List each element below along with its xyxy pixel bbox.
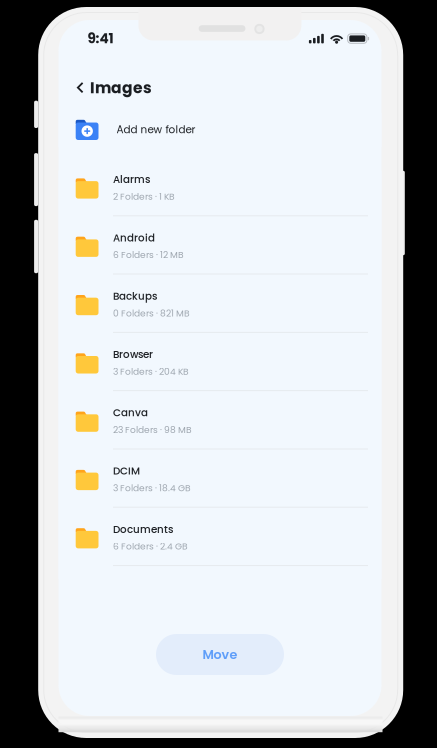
staticText: DCIM (113, 464, 140, 478)
staticText: Android (113, 231, 155, 245)
staticText: 6 Folders · 12 MB (113, 249, 184, 261)
staticText: Browser (113, 347, 153, 362)
staticText: Move (202, 646, 237, 663)
staticText: Alarms (113, 172, 150, 187)
staticText: 3 Folders · 18.4 GB (113, 482, 191, 494)
button[interactable]: Back (69, 75, 91, 101)
staticText: Canva (113, 405, 148, 420)
button[interactable]: DCIM (58, 462, 381, 521)
button[interactable]: Android (58, 229, 381, 287)
staticText: Images (90, 77, 152, 99)
staticText: 23 Folders · 98 MB (113, 423, 192, 436)
button[interactable]: Documents (58, 521, 381, 579)
staticText: Documents (113, 522, 173, 536)
staticText: 6 Folders · 2.4 GB (113, 540, 188, 553)
button[interactable]: Add new folder (58, 113, 381, 147)
button[interactable]: Canva (58, 404, 381, 462)
staticText: 0 Folders · 821 MB (113, 307, 190, 320)
button[interactable]: Alarms (58, 171, 381, 229)
staticText: Add new folder (116, 122, 195, 137)
staticText: Backups (113, 289, 157, 303)
staticText: 9:41 (87, 29, 113, 48)
staticText: 3 Folders · 204 KB (113, 365, 189, 378)
button[interactable]: Backups (58, 287, 381, 346)
button[interactable]: Browser (58, 346, 381, 404)
button[interactable]: Move (156, 634, 284, 675)
staticText: 2 Folders · 1 KB (113, 190, 175, 203)
